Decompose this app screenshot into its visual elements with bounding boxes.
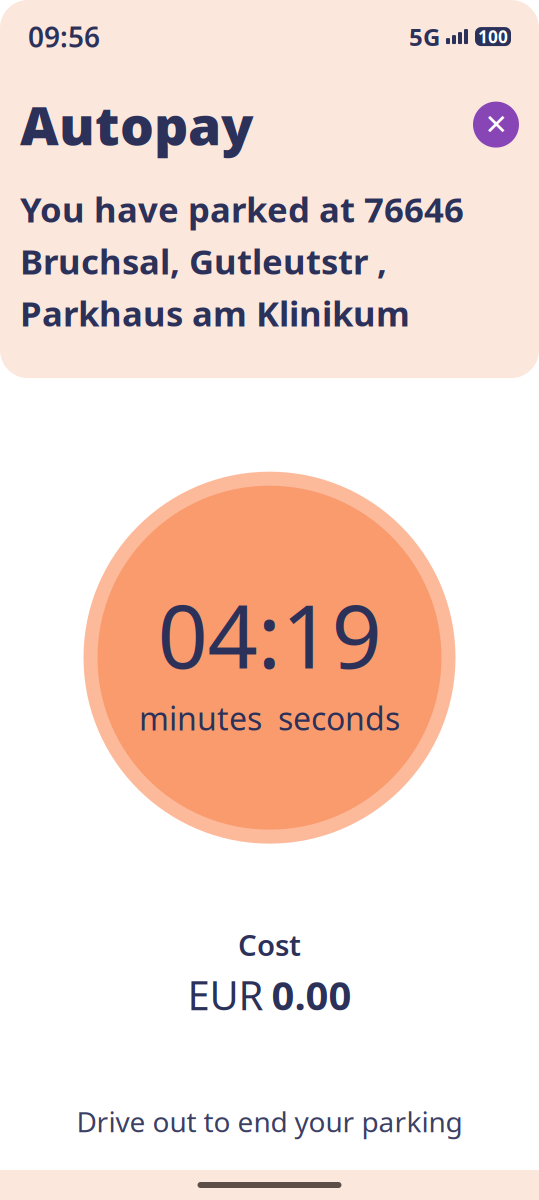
staticText: Autopay — [20, 89, 254, 160]
staticText: Cost — [238, 925, 301, 964]
staticText: 09:56 — [28, 18, 100, 55]
staticText: 5G — [409, 21, 440, 53]
staticText: minutes seconds — [139, 697, 400, 739]
staticText: Drive out to end your parking — [76, 1103, 462, 1140]
staticText: EUR — [187, 968, 263, 1021]
button[interactable]: Close — [473, 102, 519, 148]
staticText: 0.00 — [271, 968, 351, 1021]
staticText: You have parked at 76646 Bruchsal, Gutle… — [20, 186, 464, 336]
staticText: 04:19 — [157, 576, 381, 693]
staticText: 100 — [478, 25, 508, 48]
staticText: ✕ — [484, 109, 507, 140]
